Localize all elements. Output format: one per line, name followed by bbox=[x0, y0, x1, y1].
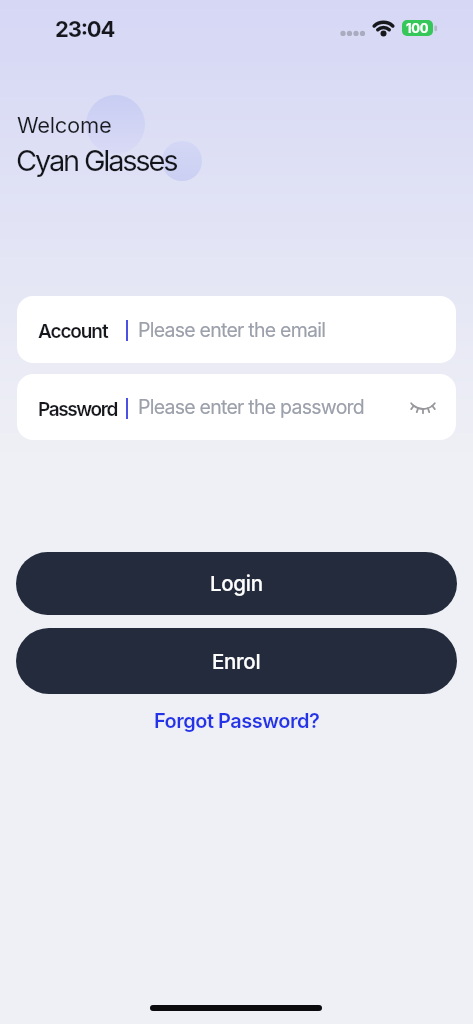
staticText: Password bbox=[38, 398, 117, 421]
button[interactable]: Login bbox=[16, 552, 457, 615]
staticText: 100 bbox=[406, 20, 429, 36]
staticText: Enrol bbox=[212, 649, 261, 674]
button[interactable]: Forgot Password? bbox=[0, 706, 473, 736]
button[interactable]: Enrol bbox=[16, 628, 457, 694]
staticText: Cyan Glasses bbox=[16, 143, 177, 178]
staticText: 23:04 bbox=[55, 16, 115, 43]
button[interactable] bbox=[410, 394, 436, 420]
button[interactable]: Password bbox=[17, 374, 456, 440]
button[interactable]: Account bbox=[17, 296, 456, 363]
staticText: Account bbox=[38, 320, 108, 343]
staticText: Please enter the email bbox=[138, 318, 326, 342]
staticText: Please enter the password bbox=[138, 395, 365, 419]
staticText: Welcome bbox=[17, 112, 112, 139]
staticText: Login bbox=[210, 571, 263, 596]
staticText: Forgot Password? bbox=[154, 709, 320, 733]
